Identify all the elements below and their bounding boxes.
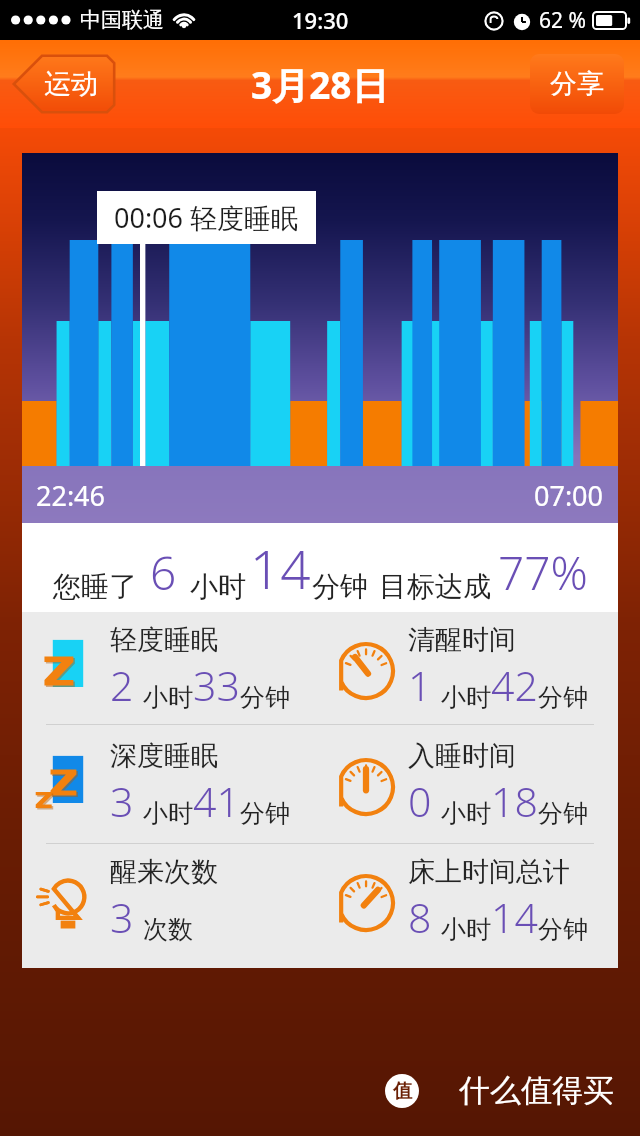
button[interactable]: 轻度睡眠 bbox=[30, 612, 320, 724]
staticText: 分钟 bbox=[240, 798, 290, 829]
staticText: 运动 bbox=[44, 67, 98, 101]
other: 醒来次数 bbox=[30, 862, 106, 938]
staticText: 77% bbox=[498, 541, 588, 604]
button[interactable]: 仪表 bbox=[328, 725, 618, 843]
staticText: 您睡了 bbox=[53, 569, 137, 604]
staticText: 3月28日 bbox=[251, 59, 389, 110]
staticText: 什么值得买 bbox=[459, 1071, 614, 1110]
staticText: 42 bbox=[491, 657, 538, 713]
staticText: 值 bbox=[393, 1079, 412, 1103]
staticText: 分钟 bbox=[312, 569, 368, 604]
staticText: 07:00 bbox=[534, 477, 604, 514]
button[interactable]: 分享 bbox=[530, 54, 624, 114]
staticText: 清醒时间 bbox=[408, 623, 516, 657]
staticText: 33 bbox=[193, 657, 240, 713]
staticText: 小时 bbox=[441, 798, 491, 829]
staticText: 分钟 bbox=[240, 682, 290, 713]
other: 深度睡眠 bbox=[30, 746, 106, 822]
staticText: 次数 bbox=[143, 914, 193, 945]
staticText: 小时 bbox=[441, 682, 491, 713]
button[interactable]: 仪表 bbox=[328, 612, 618, 724]
other: 仪表 bbox=[328, 862, 404, 938]
button[interactable]: 仪表 bbox=[328, 844, 618, 956]
other: 仪表 bbox=[328, 746, 404, 822]
button[interactable]: 醒来次数 bbox=[30, 844, 320, 956]
staticText: 小时 bbox=[143, 682, 193, 713]
button[interactable]: 返回 运动 bbox=[12, 54, 116, 114]
staticText: 深度睡眠 bbox=[110, 739, 218, 773]
staticText: 18 bbox=[491, 773, 538, 829]
staticText: 床上时间总计 bbox=[408, 855, 570, 889]
staticText: 入睡时间 bbox=[408, 739, 516, 773]
staticText: 00:06 轻度睡眠 bbox=[114, 199, 299, 236]
staticText: 22:46 bbox=[36, 477, 106, 514]
button[interactable]: 深度睡眠 bbox=[30, 725, 320, 843]
staticText: 目标达成 bbox=[379, 569, 491, 604]
staticText: 14 bbox=[491, 889, 538, 945]
staticText: 41 bbox=[193, 773, 240, 829]
other: 轻度睡眠 bbox=[30, 630, 106, 706]
staticText: 醒来次数 bbox=[110, 855, 218, 889]
staticText: 14 bbox=[250, 532, 311, 604]
staticText: 0 bbox=[408, 773, 432, 829]
staticText: 分享 bbox=[550, 67, 604, 101]
staticText: 8 bbox=[408, 889, 432, 945]
staticText: 62 % bbox=[539, 6, 586, 35]
staticText: 中国联通 bbox=[80, 7, 164, 33]
staticText: 小时 bbox=[441, 914, 491, 945]
staticText: 轻度睡眠 bbox=[110, 623, 218, 657]
staticText: 2 bbox=[110, 657, 134, 713]
staticText: 分钟 bbox=[538, 682, 588, 713]
staticText: 分钟 bbox=[538, 798, 588, 829]
staticText: 19:30 bbox=[292, 5, 349, 35]
staticText: 小时 bbox=[190, 569, 246, 604]
staticText: 3 bbox=[110, 773, 134, 829]
staticText: 1 bbox=[408, 657, 432, 713]
other: 仪表 bbox=[328, 630, 404, 706]
staticText: 3 bbox=[110, 889, 134, 945]
staticText: 分钟 bbox=[538, 914, 588, 945]
staticText: 小时 bbox=[143, 798, 193, 829]
staticText: 6 bbox=[150, 541, 177, 604]
